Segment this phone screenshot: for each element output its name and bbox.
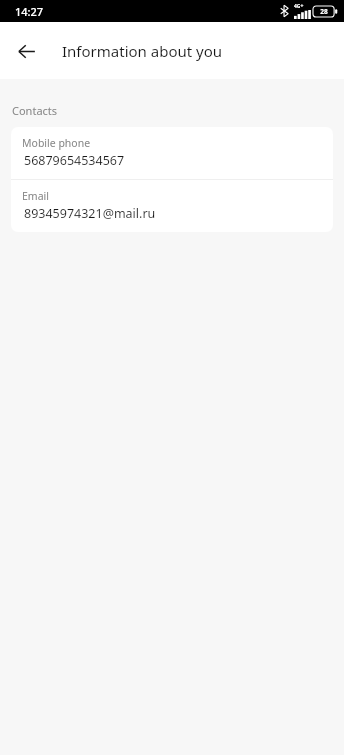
staticText: 14:27 — [15, 4, 44, 19]
staticText: Mobile phone — [22, 136, 91, 150]
staticText: Contacts — [12, 103, 58, 118]
staticText: 89345974321@mail.ru — [24, 205, 156, 222]
button[interactable]: Mobile phone — [11, 127, 333, 179]
staticText: Information about you — [62, 41, 223, 61]
button[interactable]: Back — [6, 31, 46, 71]
staticText: 4G+ — [294, 3, 304, 10]
staticText: 56879654534567 — [24, 152, 125, 169]
staticText: 28 — [320, 7, 328, 16]
button[interactable]: Email — [11, 180, 333, 232]
staticText: Email — [22, 189, 49, 203]
